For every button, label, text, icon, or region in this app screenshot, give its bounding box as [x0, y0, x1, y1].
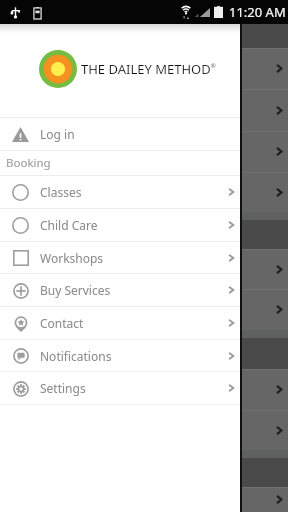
button[interactable]: Buy Services — [0, 274, 240, 306]
staticText: Buy Services — [40, 282, 226, 298]
staticText: Settings — [40, 380, 226, 396]
staticText: Classes — [40, 184, 226, 200]
staticText: Contact — [40, 315, 226, 331]
button[interactable]: List item — [0, 369, 288, 410]
button[interactable]: List item — [0, 131, 288, 172]
button[interactable]: Child Care — [0, 209, 240, 241]
button[interactable]: Classes — [0, 176, 240, 208]
staticText: Workshops — [40, 250, 226, 266]
staticText: Child Care — [40, 217, 226, 233]
staticText: Notifications — [40, 348, 226, 364]
button[interactable]: List item — [0, 172, 288, 212]
button[interactable]: Log in — [0, 118, 240, 150]
button[interactable]: Contact — [0, 307, 240, 339]
button[interactable]: Settings — [0, 372, 240, 404]
button[interactable]: List item — [0, 89, 288, 131]
staticText: 11:20 AM — [229, 3, 286, 21]
button[interactable]: List item — [0, 48, 288, 89]
button[interactable]: List item — [0, 410, 288, 450]
button[interactable]: List item — [0, 487, 288, 512]
button[interactable]: List item — [0, 289, 288, 330]
staticText: Booking — [6, 155, 51, 171]
button[interactable]: Notifications — [0, 340, 240, 371]
button[interactable]: Workshops — [0, 242, 240, 273]
staticText: Log in — [40, 126, 75, 142]
staticText: THE DAILEY METHOD® — [81, 60, 216, 78]
button[interactable]: List item — [0, 249, 288, 289]
